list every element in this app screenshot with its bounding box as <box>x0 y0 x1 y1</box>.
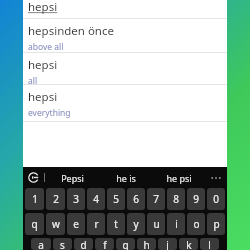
staticText: 7 <box>153 192 159 206</box>
staticText: d <box>80 238 87 250</box>
staticText: all <box>28 75 38 84</box>
staticText: 2 <box>53 192 59 206</box>
staticText: hepsi <box>28 89 58 105</box>
staticText: r <box>94 217 99 231</box>
button[interactable]: t <box>107 213 125 235</box>
button[interactable]: he is <box>99 167 152 188</box>
button[interactable]: e <box>67 213 85 235</box>
button[interactable]: l <box>200 238 219 250</box>
button[interactable]: 3 <box>67 188 85 210</box>
button[interactable]: d <box>74 238 93 250</box>
staticText: u <box>153 217 160 231</box>
button[interactable]: s <box>53 238 72 250</box>
button[interactable]: a <box>31 238 51 250</box>
button[interactable]: r <box>87 213 105 235</box>
staticText: hepsi <box>28 57 58 73</box>
staticText: q <box>31 217 38 231</box>
staticText: j <box>166 238 169 250</box>
button[interactable]: Google keyboard settings <box>23 167 44 188</box>
button[interactable]: Pepsi <box>45 167 99 188</box>
staticText: hepsi <box>28 0 58 15</box>
staticText: h <box>143 238 150 250</box>
staticText: g <box>122 238 129 250</box>
button[interactable]: k <box>179 238 198 250</box>
staticText: a <box>38 238 44 250</box>
button[interactable]: 9 <box>187 188 205 210</box>
button[interactable]: g <box>116 238 135 250</box>
staticText: y <box>133 217 139 231</box>
staticText: 9 <box>193 192 199 206</box>
button[interactable]: u <box>147 213 165 235</box>
staticText: i <box>175 217 178 231</box>
staticText: he is <box>116 172 136 184</box>
staticText: e <box>73 217 79 231</box>
button[interactable]: 4 <box>87 188 105 210</box>
button[interactable]: f <box>95 238 114 250</box>
staticText: k <box>186 238 192 250</box>
button[interactable]: w <box>46 213 65 235</box>
staticText: 3 <box>73 192 79 206</box>
staticText: 6 <box>133 192 139 206</box>
staticText: Pepsi <box>61 172 84 184</box>
button[interactable]: 5 <box>107 188 125 210</box>
button[interactable]: p <box>207 213 225 235</box>
button[interactable]: 6 <box>127 188 145 210</box>
staticText: he psi <box>166 172 192 184</box>
button[interactable]: More suggestions <box>205 167 227 188</box>
staticText: above all <box>28 41 64 52</box>
staticText: s <box>60 238 65 250</box>
staticText: f <box>103 238 107 250</box>
staticText: o <box>193 217 200 231</box>
staticText: w <box>52 217 60 231</box>
button[interactable]: hepsinden önce <box>23 19 227 52</box>
staticText: t <box>114 217 118 231</box>
staticText: everything <box>28 107 71 119</box>
button[interactable]: h <box>137 238 156 250</box>
button[interactable]: 2 <box>46 188 65 210</box>
staticText: 0 <box>213 192 219 206</box>
staticText: 5 <box>113 192 119 206</box>
button[interactable]: hepsi <box>23 0 227 18</box>
button[interactable]: y <box>127 213 145 235</box>
button[interactable]: hepsi <box>23 53 227 84</box>
button[interactable]: hepsi <box>23 85 227 121</box>
button[interactable]: j <box>158 238 177 250</box>
button[interactable]: o <box>187 213 205 235</box>
button[interactable]: q <box>25 213 44 235</box>
button[interactable]: he psi <box>152 167 205 188</box>
button[interactable]: 1 <box>25 188 44 210</box>
button[interactable]: i <box>167 213 185 235</box>
button[interactable]: 0 <box>207 188 225 210</box>
button[interactable]: 8 <box>167 188 185 210</box>
staticText: p <box>213 217 220 231</box>
staticText: 1 <box>32 192 38 206</box>
staticText: 4 <box>93 192 99 206</box>
button[interactable]: 7 <box>147 188 165 210</box>
staticText: l <box>208 238 211 250</box>
staticText: 8 <box>173 192 179 206</box>
staticText: hepsinden önce <box>28 23 114 39</box>
